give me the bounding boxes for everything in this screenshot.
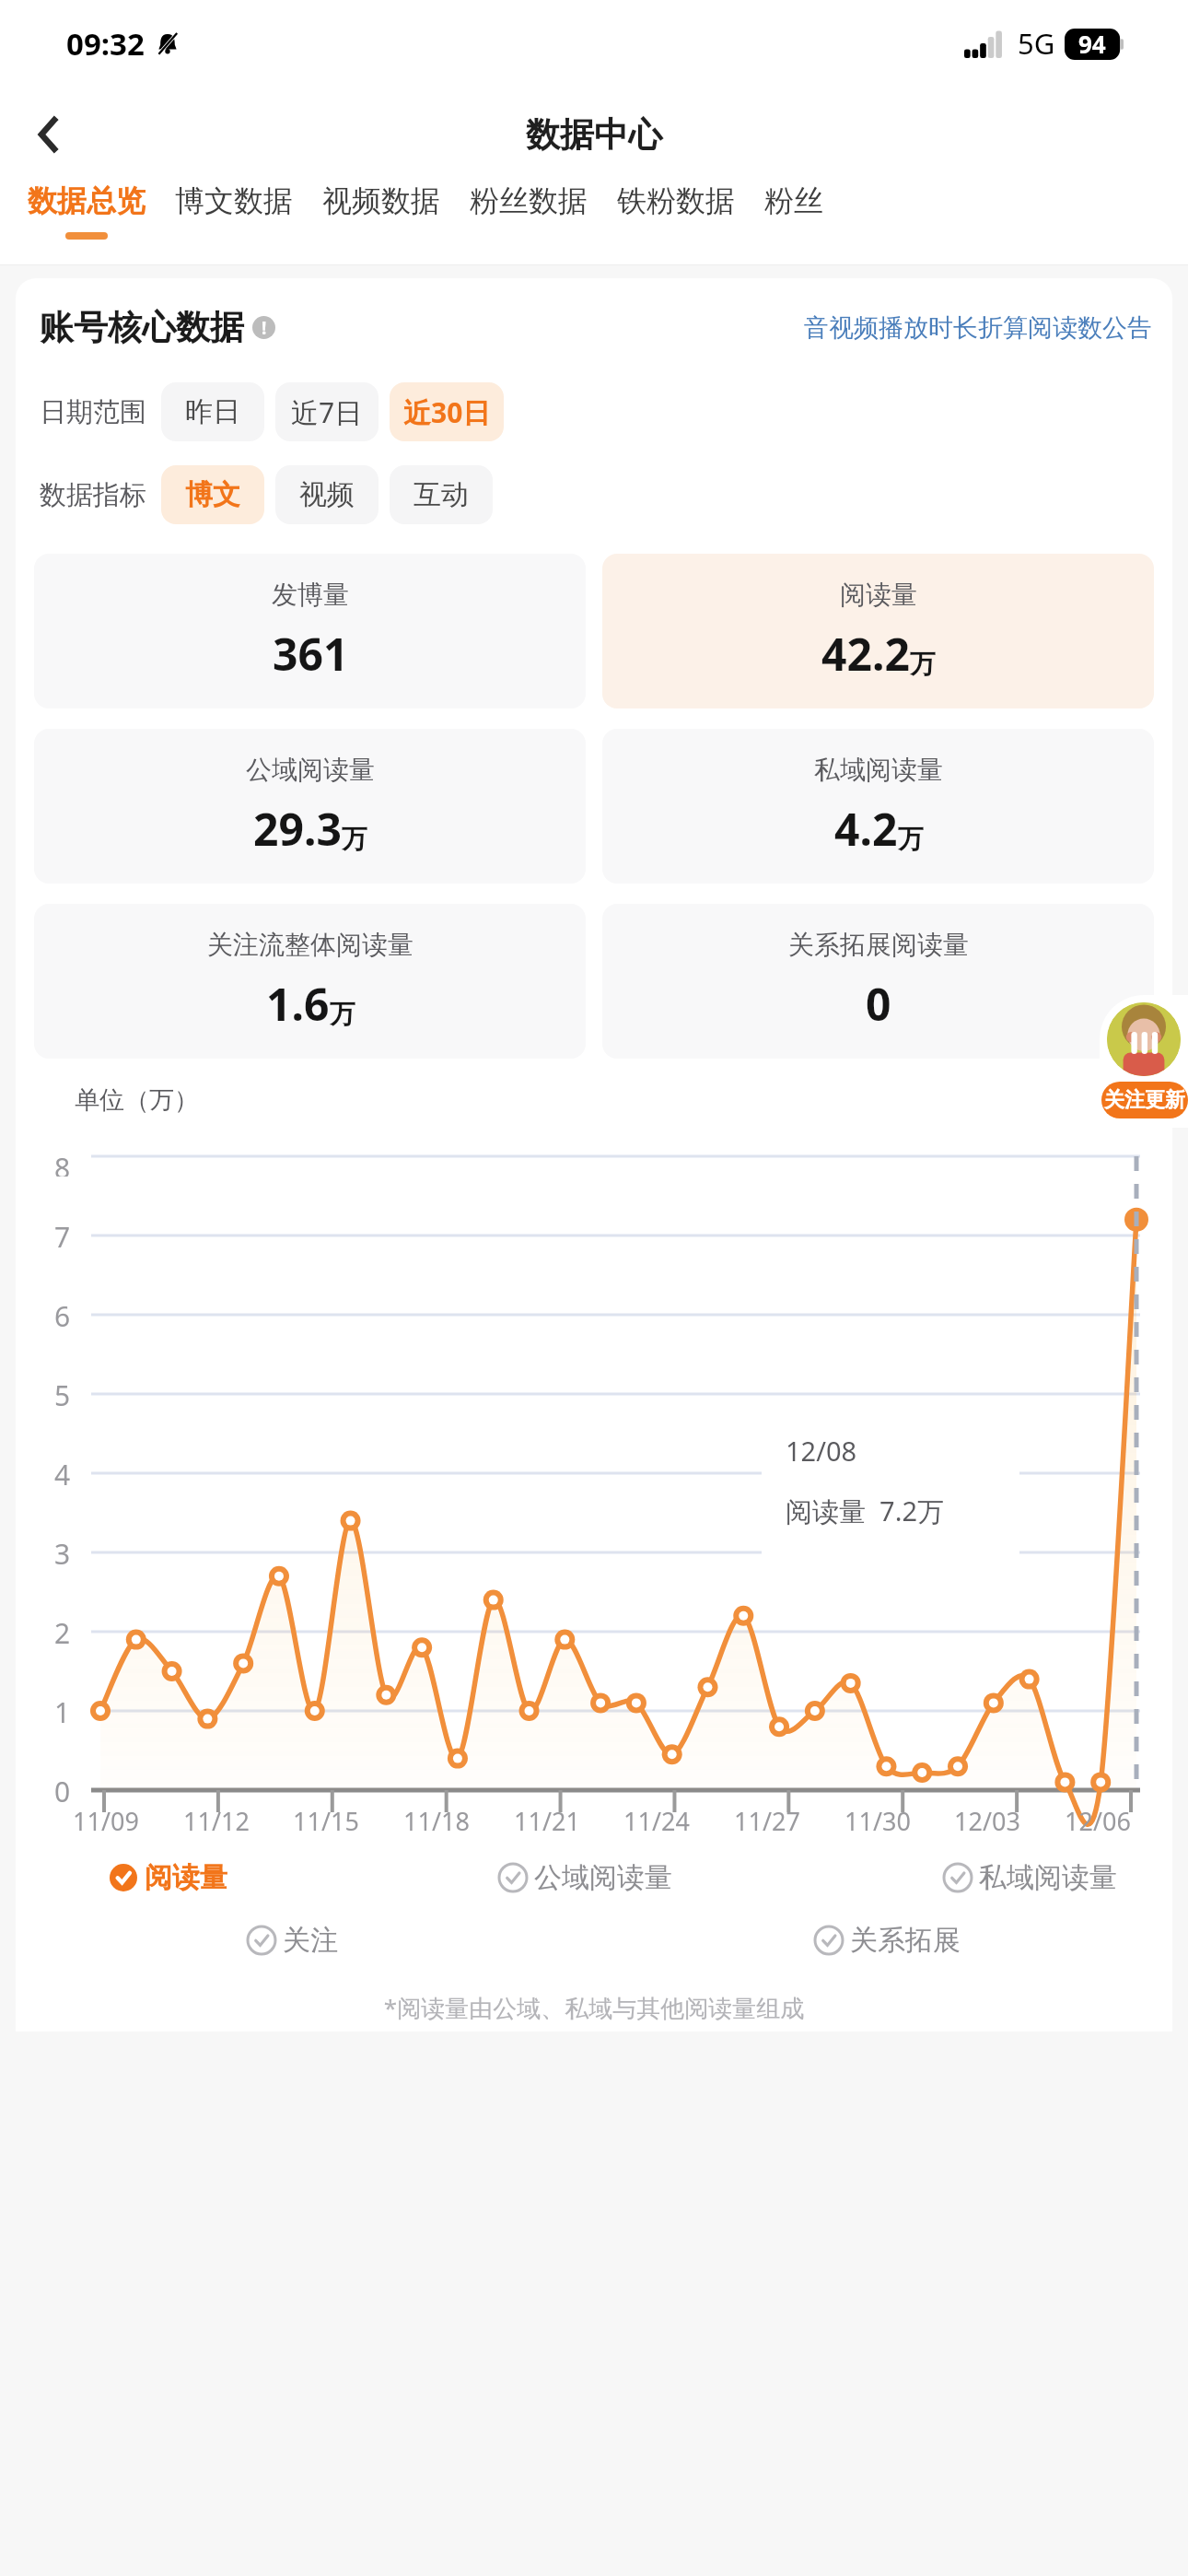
staticText: 数据指标 — [40, 478, 146, 512]
button[interactable]: 博文数据 — [175, 182, 293, 232]
staticText: 12/08 — [786, 1433, 857, 1469]
button[interactable]: 阅读量 — [602, 554, 1154, 708]
button[interactable]: Back — [15, 101, 81, 168]
staticText: 11/21 — [514, 1804, 580, 1838]
staticText: 09:32 — [66, 23, 145, 64]
staticText: 8 — [54, 1149, 71, 1177]
staticText: 万 — [342, 823, 367, 855]
staticText: 7 — [54, 1218, 71, 1256]
staticText: 阅读量 7.2万 — [786, 1493, 945, 1529]
button[interactable]: 发博量 — [34, 554, 586, 708]
staticText: 关注流整体阅读量 — [207, 929, 413, 961]
staticText: 5G — [1018, 24, 1055, 63]
button[interactable] — [1100, 995, 1188, 1128]
staticText: 3 — [54, 1535, 71, 1573]
staticText: 阅读量 — [840, 579, 917, 611]
staticText: 公域阅读量 — [246, 754, 375, 786]
staticText: 关系拓展阅读量 — [788, 929, 969, 961]
button[interactable]: 近30日 — [390, 382, 504, 441]
staticText: 视频数据 — [322, 182, 440, 219]
staticText: 互动 — [413, 477, 469, 512]
staticText: 42.2 — [821, 624, 910, 684]
staticText: 万 — [898, 823, 924, 855]
staticText: 11/09 — [73, 1804, 139, 1838]
staticText: 11/27 — [734, 1804, 800, 1838]
button[interactable]: 阅读量 — [108, 1860, 227, 1895]
staticText: 11/12 — [183, 1804, 250, 1838]
staticText: 12/03 — [954, 1804, 1020, 1838]
button[interactable]: 公域阅读量 — [34, 729, 586, 884]
staticText: 5 — [54, 1376, 71, 1414]
staticText: 4.2 — [834, 799, 898, 859]
staticText: 博文 — [185, 477, 240, 512]
staticText: 万 — [330, 998, 355, 1030]
staticText: 6 — [54, 1297, 71, 1335]
staticText: 关注更新 — [1104, 1087, 1185, 1113]
staticText: 11/24 — [623, 1804, 690, 1838]
staticText: 2 — [54, 1614, 71, 1652]
staticText: 29.3 — [253, 799, 342, 859]
staticText: 数据中心 — [526, 113, 662, 157]
staticText: 博文数据 — [175, 182, 293, 219]
staticText: 12/06 — [1065, 1804, 1131, 1838]
staticText: 11/30 — [844, 1804, 911, 1838]
button[interactable]: 关注 — [246, 1923, 338, 1958]
staticText: 账号核心数据 — [40, 306, 244, 349]
staticText: 11/18 — [403, 1804, 470, 1838]
staticText: 11/15 — [293, 1804, 359, 1838]
staticText: 361 — [273, 624, 349, 684]
staticText: 近7日 — [291, 393, 363, 431]
staticText: 公域阅读量 — [534, 1860, 672, 1895]
button[interactable]: 昨日 — [161, 382, 264, 441]
button[interactable]: 私域阅读量 — [942, 1860, 1117, 1895]
staticText: 万 — [910, 648, 936, 680]
staticText: 阅读量 — [145, 1860, 227, 1895]
button[interactable]: 数据总览 — [28, 182, 146, 240]
staticText: 私域阅读量 — [814, 754, 943, 786]
staticText: 0 — [54, 1773, 71, 1810]
button[interactable]: 近7日 — [275, 382, 379, 441]
staticText: 私域阅读量 — [979, 1860, 1117, 1895]
button[interactable]: 公域阅读量 — [497, 1860, 672, 1895]
staticText: 94 — [1078, 28, 1106, 60]
staticText: 发博量 — [272, 579, 349, 611]
staticText: 1.6 — [266, 974, 330, 1034]
staticText: 0 — [866, 974, 891, 1034]
staticText: 关系拓展 — [850, 1923, 961, 1958]
button[interactable]: 关系拓展 — [813, 1923, 961, 1958]
button[interactable]: 互动 — [390, 465, 493, 524]
button[interactable]: 粉丝 — [764, 182, 823, 232]
button[interactable]: 关系拓展阅读量 — [602, 904, 1154, 1059]
button[interactable]: 视频 — [275, 465, 379, 524]
staticText: 铁粉数据 — [617, 182, 735, 219]
button[interactable]: 关注流整体阅读量 — [34, 904, 586, 1059]
staticText: 粉丝数据 — [470, 182, 588, 219]
staticText: 关注 — [283, 1923, 338, 1958]
button[interactable]: 粉丝数据 — [470, 182, 588, 232]
button[interactable]: 博文 — [161, 465, 264, 524]
button[interactable]: 视频数据 — [322, 182, 440, 232]
button[interactable]: 铁粉数据 — [617, 182, 735, 232]
staticText: *阅读量由公域、私域与其他阅读量组成 — [16, 1991, 1172, 2024]
staticText: 4 — [54, 1456, 71, 1493]
staticText: 单位（万） — [75, 1084, 199, 1116]
staticText: 数据总览 — [28, 182, 146, 219]
staticText: ! — [262, 316, 267, 339]
staticText: 1 — [54, 1693, 71, 1731]
staticText: 近30日 — [403, 393, 491, 431]
staticText: 粉丝 — [764, 182, 823, 219]
staticText: 视频 — [299, 477, 355, 512]
button[interactable]: 音视频播放时长折算阅读数公告 — [804, 312, 1152, 344]
staticText: 日期范围 — [40, 395, 146, 429]
button[interactable]: Info — [252, 316, 275, 339]
staticText: 昨日 — [185, 394, 240, 429]
button[interactable]: 私域阅读量 — [602, 729, 1154, 884]
